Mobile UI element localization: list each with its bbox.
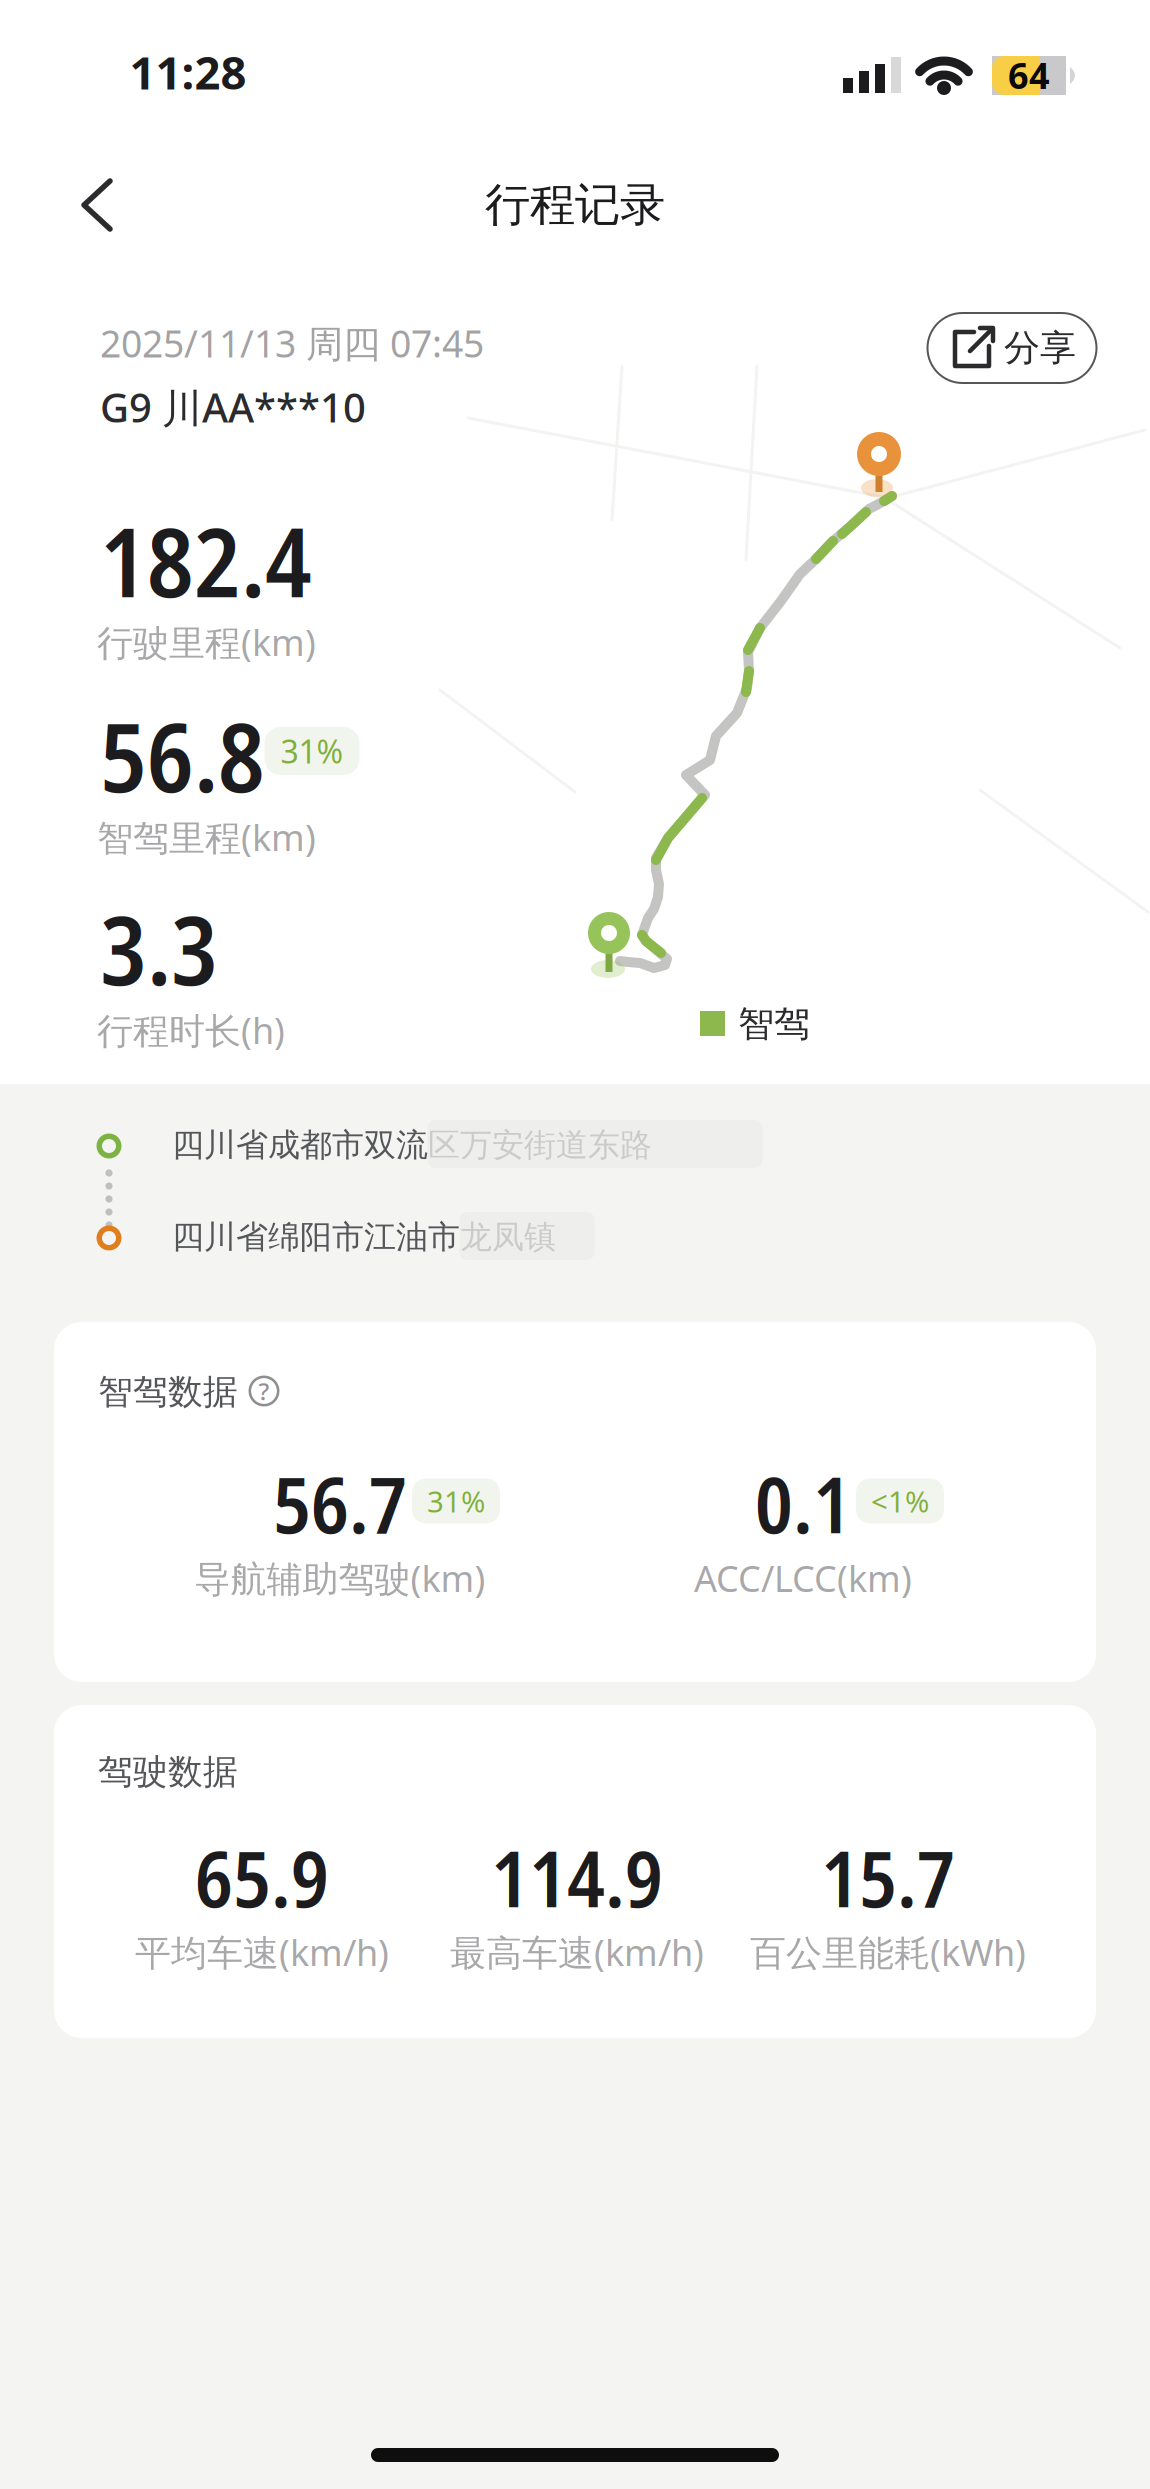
staticText: 四川省成都市双流区万安街道东路 bbox=[172, 1125, 652, 1165]
staticText: ACC/LCC(km) bbox=[694, 1554, 912, 1602]
staticText: 行程时长(h) bbox=[97, 1006, 285, 1054]
staticText: 114.9 bbox=[491, 1824, 663, 1930]
staticText: ? bbox=[258, 1375, 269, 1407]
button[interactable]: 分享 bbox=[926, 312, 1097, 384]
staticText: 驾驶数据 bbox=[98, 1751, 238, 1793]
staticText: 智驾里程(km) bbox=[97, 813, 316, 861]
staticText: 导航辅助驾驶(km) bbox=[194, 1554, 485, 1602]
staticText: 31% bbox=[427, 1481, 485, 1520]
staticText: G9 川AA***10 bbox=[100, 380, 366, 434]
staticText: 行程记录 bbox=[485, 177, 665, 233]
staticText: <1% bbox=[871, 1481, 929, 1520]
staticText: 64 bbox=[1008, 51, 1050, 99]
staticText: 11:28 bbox=[129, 42, 246, 102]
staticText: 0.1 bbox=[755, 1450, 851, 1556]
staticText: 2025/11/13 周四 07:45 bbox=[100, 318, 484, 368]
button[interactable]: 返回 bbox=[57, 165, 137, 245]
staticText: 15.7 bbox=[821, 1824, 955, 1930]
staticText: 最高车速(km/h) bbox=[450, 1928, 704, 1976]
button[interactable]: 智驾数据说明 bbox=[244, 1371, 284, 1411]
staticText: 182.4 bbox=[100, 495, 312, 625]
staticText: 平均车速(km/h) bbox=[135, 1928, 389, 1976]
staticText: 智驾数据 bbox=[98, 1371, 238, 1413]
staticText: 65.9 bbox=[195, 1824, 329, 1930]
staticText: 3.3 bbox=[100, 883, 218, 1013]
staticText: 四川省绵阳市江油市龙凤镇 bbox=[172, 1217, 556, 1257]
staticText: 行驶里程(km) bbox=[97, 618, 316, 666]
staticText: 31% bbox=[280, 730, 343, 772]
staticText: 智驾 bbox=[738, 1002, 810, 1046]
staticText: 分享 bbox=[1004, 326, 1076, 370]
staticText: 56.8 bbox=[100, 690, 265, 820]
staticText: 56.7 bbox=[273, 1450, 407, 1556]
staticText: 百公里能耗(kWh) bbox=[750, 1928, 1026, 1976]
